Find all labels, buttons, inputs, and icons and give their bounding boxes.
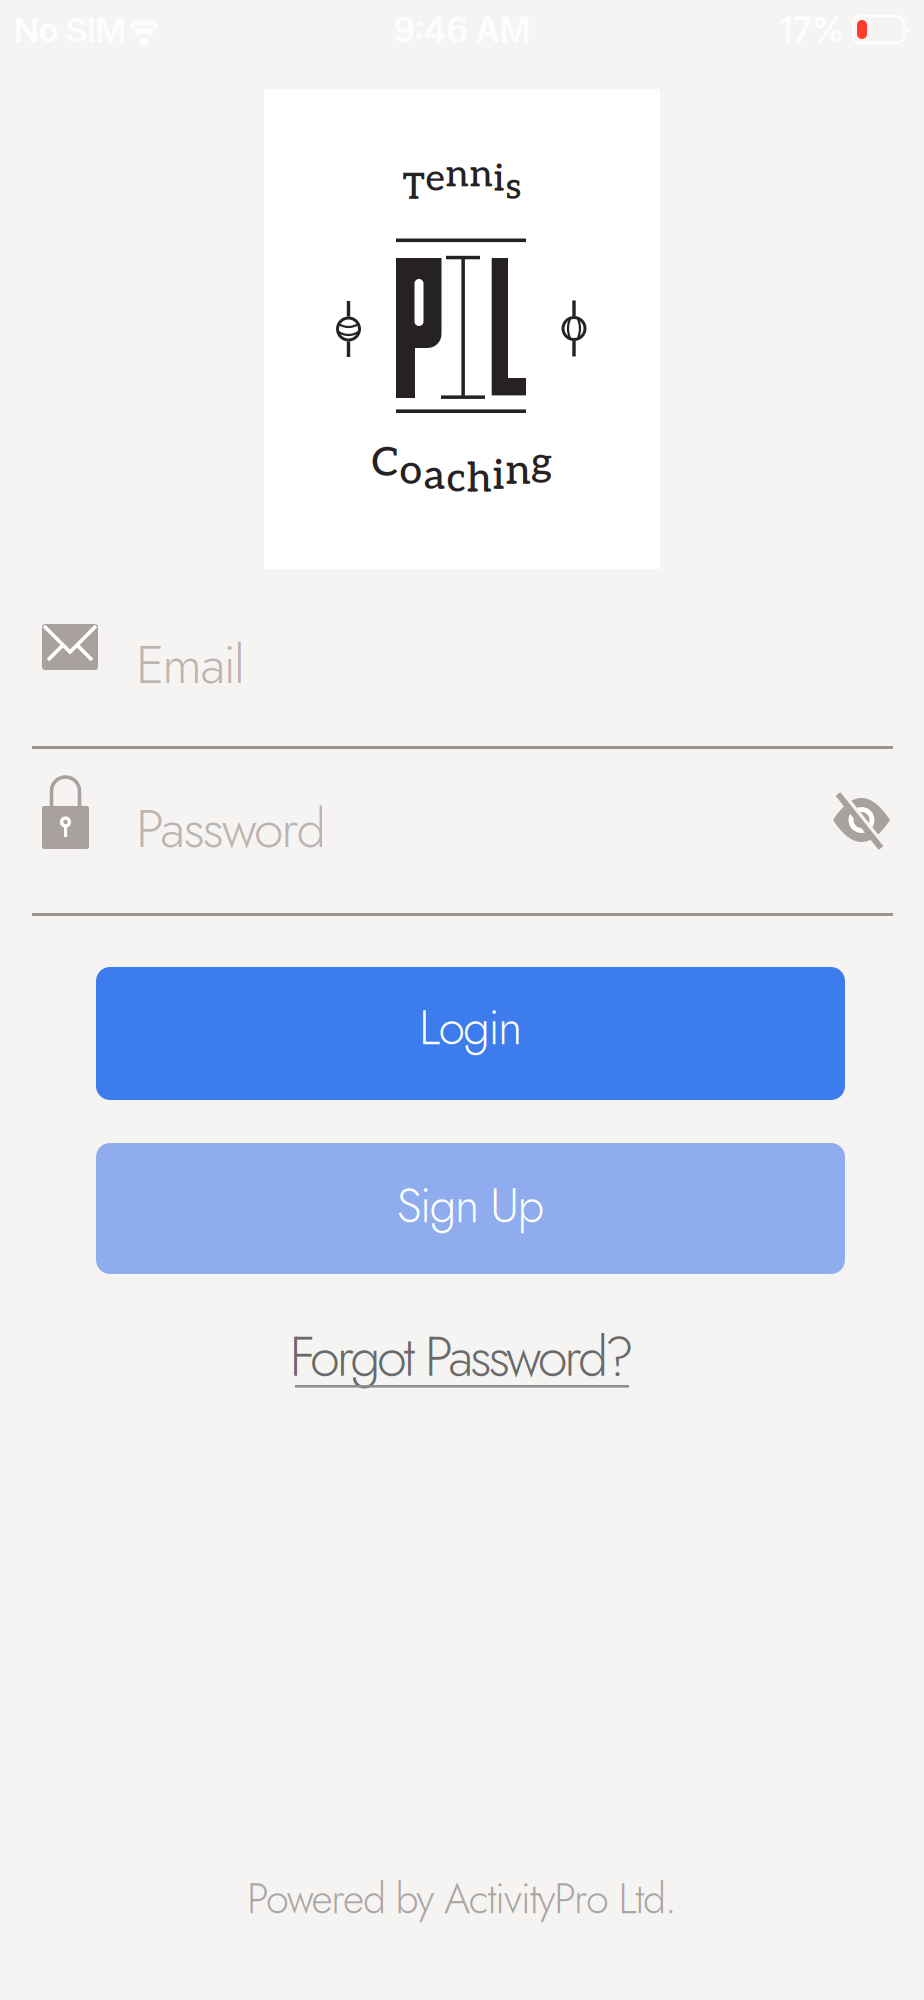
staticText: h xyxy=(466,455,491,503)
button[interactable]: Password xyxy=(32,775,893,916)
button[interactable] xyxy=(830,792,893,850)
staticText: C xyxy=(371,439,398,488)
staticText: 9:46 AM xyxy=(393,9,530,51)
staticText: Login xyxy=(419,993,522,1062)
staticText: Email xyxy=(136,626,245,703)
button[interactable]: Sign Up xyxy=(96,1143,845,1274)
staticText: Forgot Password? xyxy=(289,1318,634,1396)
staticText: Powered by ActivityPro Ltd. xyxy=(247,1869,677,1929)
staticText: c xyxy=(446,455,465,503)
staticText: n xyxy=(469,152,492,197)
staticText: Sign Up xyxy=(396,1171,544,1240)
staticText: g xyxy=(531,439,552,488)
staticText: n xyxy=(505,447,530,496)
button[interactable]: Email xyxy=(32,624,893,749)
staticText: n xyxy=(445,152,468,197)
staticText: a xyxy=(423,452,445,501)
staticText: i xyxy=(493,157,504,201)
staticText: i xyxy=(492,452,504,501)
staticText: s xyxy=(505,165,521,210)
staticText: No SIM xyxy=(14,9,125,50)
staticText: e xyxy=(425,157,444,201)
staticText: Password xyxy=(136,790,326,867)
button[interactable]: Login xyxy=(96,967,845,1100)
staticText: T xyxy=(402,165,424,210)
button[interactable]: Forgot Password? xyxy=(262,1328,662,1392)
staticText: o xyxy=(399,447,422,496)
staticText: 17% xyxy=(779,9,845,51)
